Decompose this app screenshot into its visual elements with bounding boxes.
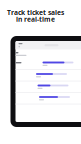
button[interactable]: Ticket tier row (1, 58, 81, 70)
staticText: Track ticket sales (7, 8, 64, 17)
button[interactable]: Ticket tier row (1, 81, 81, 93)
staticText: in real-time (16, 15, 55, 24)
button[interactable]: Ticket tier row (1, 93, 81, 104)
button[interactable]: Ticket tier row (1, 70, 81, 81)
